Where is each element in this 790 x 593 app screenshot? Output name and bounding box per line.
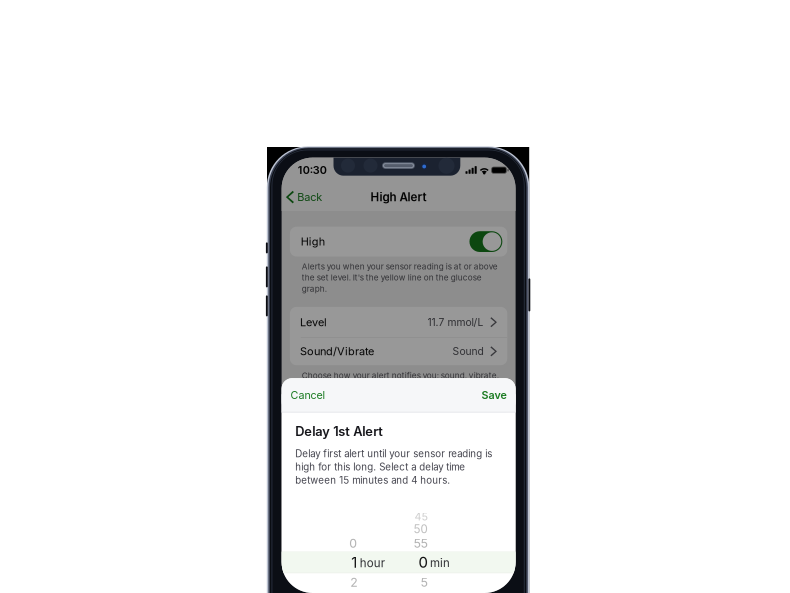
staticText: Delay 1st Alert [295, 424, 383, 439]
staticText: 2 [350, 575, 357, 590]
staticText: Delay first alert until your sensor read… [295, 448, 492, 486]
staticText: Alerts you when your sensor reading is a… [302, 262, 498, 294]
staticText: Level [300, 316, 327, 329]
staticText: Back [297, 190, 322, 204]
staticText: High Alert [371, 190, 427, 204]
button[interactable]: Back [283, 182, 325, 212]
button[interactable]: Sound/Vibrate [290, 337, 507, 365]
staticText: Cancel [291, 389, 326, 402]
staticText: Sound/Vibrate [300, 345, 374, 358]
staticText: High [301, 235, 325, 248]
staticText: 1 [351, 553, 357, 571]
staticText: 0 [418, 553, 427, 571]
button[interactable]: Level [290, 307, 507, 337]
button[interactable]: Save [475, 378, 513, 412]
staticText: 0 [349, 536, 357, 551]
staticText: Sound [453, 345, 484, 357]
staticText: min [430, 556, 450, 570]
staticText: 50 [413, 522, 427, 536]
button[interactable]: High [290, 227, 507, 256]
button[interactable]: Cancel [284, 378, 332, 412]
staticText: Save [482, 389, 507, 402]
staticText: 55 [413, 536, 427, 551]
staticText: 11.7 mmol/L [428, 316, 484, 328]
staticText: hour [360, 556, 385, 570]
staticText: 45 [414, 510, 427, 523]
staticText: 5 [420, 575, 427, 590]
staticText: 10:30 [298, 164, 327, 177]
staticText: Choose how your alert notifies you: soun… [302, 371, 499, 392]
